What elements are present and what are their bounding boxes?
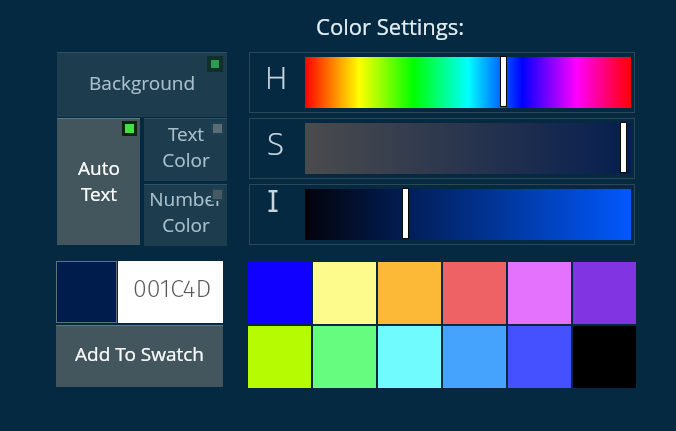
staticText: Color Settings: (316, 11, 465, 41)
staticText: Number Color (149, 186, 223, 238)
staticText: H (265, 56, 288, 98)
button[interactable]: Auto Text (57, 118, 140, 245)
staticText: 001C4D (133, 274, 212, 304)
staticText: Auto Text (78, 155, 120, 206)
button[interactable]: Background (57, 52, 227, 117)
staticText: Text Color (162, 121, 210, 173)
staticText: Add To Swatch (75, 341, 205, 367)
button[interactable]: Add To Swatch (56, 325, 223, 387)
staticText: Background (89, 70, 196, 96)
button[interactable]: Number Color (144, 184, 227, 246)
button[interactable]: S (249, 118, 635, 179)
button[interactable]: 001C4D (118, 261, 223, 323)
button[interactable] (249, 184, 635, 245)
button[interactable]: Text Color (144, 118, 227, 181)
staticText: S (267, 122, 284, 164)
button[interactable]: H (249, 52, 635, 113)
